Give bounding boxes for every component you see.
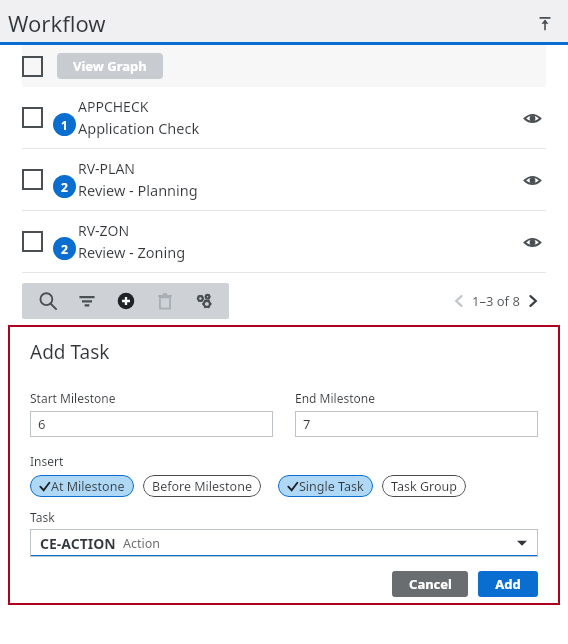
staticText: RV-PLAN (78, 159, 136, 178)
button[interactable]: Add (492, 571, 524, 597)
button[interactable]: Delete (145, 283, 184, 319)
button[interactable]: 6 (30, 411, 273, 437)
staticText: 2 (61, 179, 68, 195)
staticText: Add Task (30, 339, 110, 365)
staticText: Review - Zoning (78, 242, 186, 262)
staticText: CE-ACTION (40, 534, 116, 553)
button[interactable]: Search (28, 283, 67, 319)
staticText: RV-ZON (78, 221, 130, 240)
button[interactable]: View (518, 104, 546, 132)
button[interactable]: Select (22, 107, 43, 128)
staticText: Application Check (78, 118, 200, 138)
button[interactable]: Select (22, 56, 43, 77)
staticText: Task (30, 509, 55, 525)
button[interactable]: Task Group (391, 475, 457, 497)
button[interactable]: View Graph (73, 53, 147, 79)
button[interactable]: Settings (184, 283, 223, 319)
button[interactable]: View (518, 166, 546, 194)
staticText: 7 (303, 415, 311, 433)
staticText: Add (495, 575, 521, 593)
button[interactable]: Next (520, 288, 546, 314)
staticText: Start Milestone (30, 390, 116, 406)
staticText: Cancel (409, 575, 452, 593)
button[interactable]: Previous (446, 288, 472, 314)
staticText: 1 (61, 117, 68, 133)
staticText: 6 (38, 415, 46, 433)
staticText: View Graph (73, 57, 147, 75)
staticText: 1–3 of 8 (472, 292, 520, 310)
staticText: End Milestone (295, 390, 375, 406)
staticText: Action (123, 535, 161, 552)
staticText: APPCHECK (78, 97, 149, 116)
staticText: 2 (61, 241, 68, 257)
button[interactable]: Select (22, 231, 43, 252)
button[interactable]: Single Task (287, 475, 364, 497)
staticText: Before Milestone (152, 478, 252, 495)
other: Open list (515, 536, 529, 550)
button[interactable]: Select (22, 149, 546, 210)
button[interactable]: Filter (67, 283, 106, 319)
button[interactable]: Select (22, 169, 43, 190)
staticText: Review - Planning (78, 180, 198, 200)
staticText: Insert (30, 453, 64, 469)
button[interactable]: Before Milestone (152, 475, 252, 497)
button[interactable]: At Milestone (39, 475, 125, 497)
button[interactable]: View (518, 228, 546, 256)
button[interactable]: CE-ACTION (30, 529, 538, 557)
button[interactable]: 7 (295, 411, 538, 437)
button[interactable]: Select (22, 211, 546, 272)
button[interactable]: Collapse (532, 10, 558, 36)
button[interactable]: Add (106, 283, 145, 319)
button[interactable]: Select (22, 87, 546, 148)
staticText: Workflow (8, 8, 106, 38)
staticText: Task Group (391, 478, 457, 495)
staticText: At Milestone (51, 478, 125, 495)
staticText: Single Task (299, 478, 364, 495)
button[interactable]: Cancel (406, 571, 454, 597)
